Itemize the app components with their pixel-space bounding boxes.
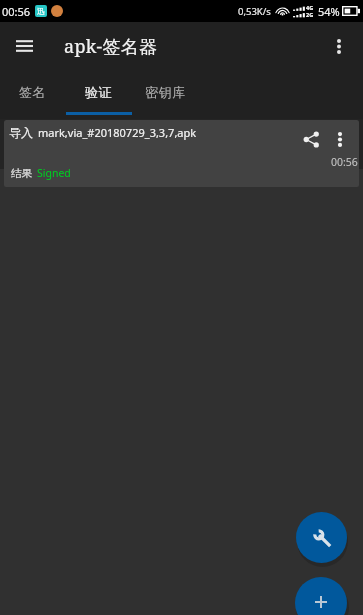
button[interactable]: Share xyxy=(296,124,326,154)
staticText: 54% xyxy=(318,4,340,19)
staticText: Signed xyxy=(37,166,71,180)
staticText: 结果 xyxy=(11,167,32,180)
button[interactable]: 签名 xyxy=(0,70,66,119)
staticText: 迅 xyxy=(37,6,45,16)
staticText: 4G xyxy=(306,4,314,11)
button[interactable]: More options xyxy=(315,22,363,70)
staticText: 导入 xyxy=(9,125,33,140)
button[interactable]: 验证 xyxy=(66,70,132,119)
button[interactable]: More xyxy=(328,127,352,151)
button[interactable]: 密钥库 xyxy=(132,70,198,119)
staticText: 签名 xyxy=(19,84,47,100)
staticText: apk-签名器 xyxy=(64,34,158,59)
staticText: 00:56 xyxy=(331,155,358,169)
button[interactable]: Tools xyxy=(296,512,347,563)
button[interactable]: 导入 xyxy=(4,120,359,187)
staticText: 密钥库 xyxy=(145,84,186,100)
staticText: 验证 xyxy=(85,84,113,100)
staticText: 00:56 xyxy=(2,4,31,19)
staticText: mark,via_#20180729_3,3,7,apk xyxy=(38,125,197,140)
staticText: 2G xyxy=(306,11,314,18)
button[interactable]: Add xyxy=(295,577,347,615)
button[interactable]: Navigation menu xyxy=(0,22,48,70)
staticText: 0,53K/s xyxy=(238,5,271,18)
